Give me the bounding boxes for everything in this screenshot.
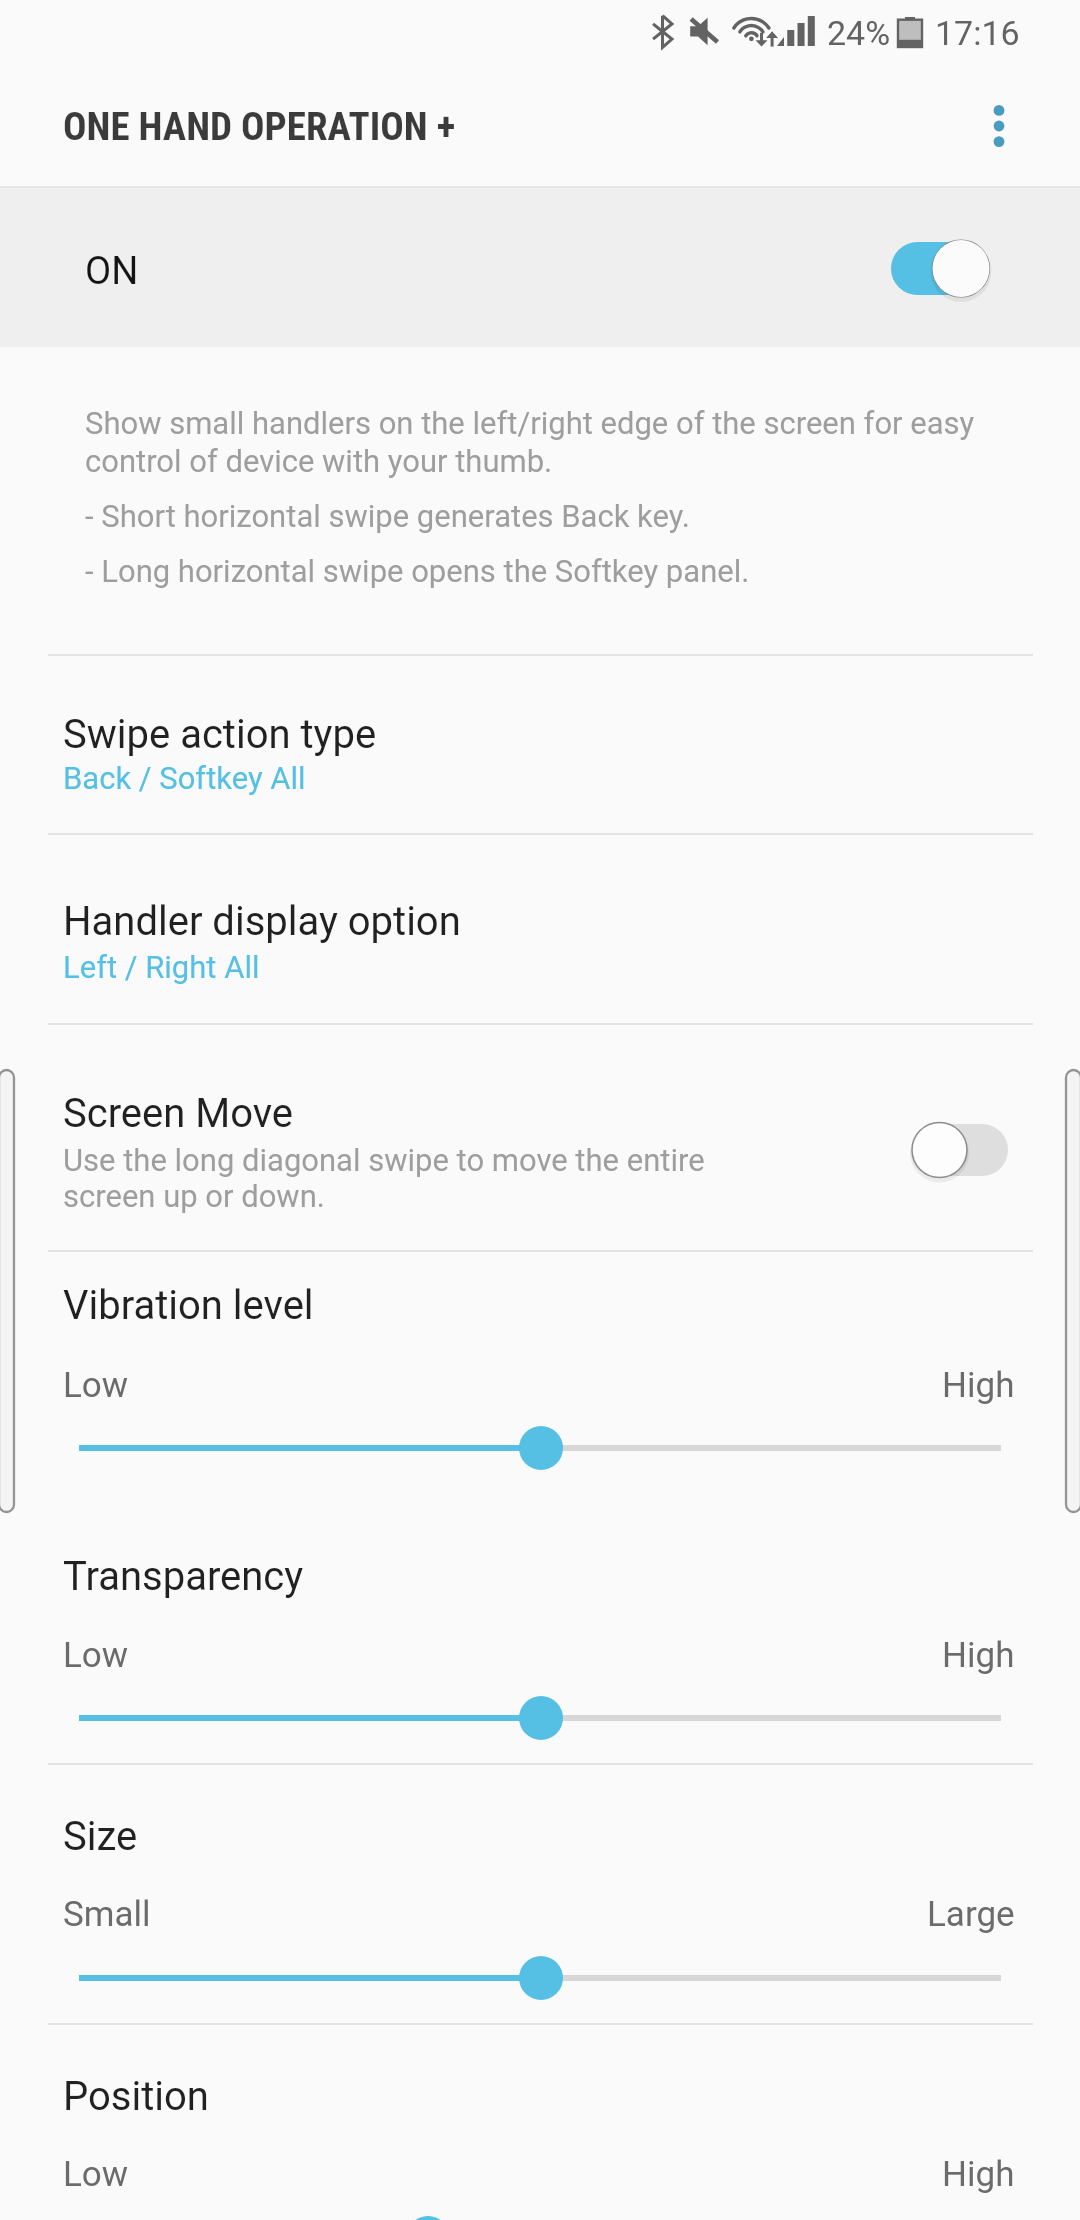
button[interactable]: Vibration level slider [48, 1415, 1033, 1481]
button[interactable]: Screen Move [0, 1040, 1080, 1245]
staticText: Back / Softkey All [63, 760, 306, 796]
staticText: 24% [827, 13, 891, 53]
staticText: Show small handlers on the left/right ed… [85, 405, 975, 441]
button[interactable]: Transparency slider [48, 1685, 1033, 1751]
staticText: Large [927, 1894, 1015, 1935]
button[interactable]: More options [951, 78, 1046, 173]
staticText: High [942, 2154, 1015, 2195]
staticText: - Long horizontal swipe opens the Softke… [85, 553, 750, 589]
staticText: 17:16 [935, 13, 1020, 53]
staticText: Low [63, 1635, 129, 1676]
button[interactable]: ON [0, 186, 1080, 347]
button[interactable]: Handler display option [0, 855, 1080, 1023]
staticText: High [942, 1635, 1015, 1676]
staticText: Swipe action type [63, 711, 377, 758]
staticText: Position [63, 2073, 209, 2120]
staticText: ON [85, 249, 139, 294]
staticText: Handler display option [63, 898, 461, 945]
staticText: High [942, 1365, 1015, 1406]
button[interactable]: Position slider [48, 2205, 1033, 2220]
staticText: control of device with your thumb. [85, 443, 553, 479]
button[interactable]: Size slider [48, 1945, 1033, 2011]
staticText: Low [63, 2154, 129, 2195]
button[interactable]: Swipe action type [0, 676, 1080, 832]
staticText: screen up or down. [63, 1178, 325, 1214]
staticText: Left / Right All [63, 949, 260, 985]
staticText: Screen Move [63, 1090, 294, 1137]
staticText: ONE HAND OPERATION + [63, 104, 456, 150]
staticText: Vibration level [63, 1282, 314, 1329]
staticText: Transparency [63, 1553, 304, 1600]
staticText: Use the long diagonal swipe to move the … [63, 1142, 705, 1178]
staticText: Size [63, 1813, 138, 1860]
staticText: Low [63, 1365, 129, 1406]
staticText: - Short horizontal swipe generates Back … [85, 498, 690, 534]
staticText: Small [63, 1894, 151, 1935]
